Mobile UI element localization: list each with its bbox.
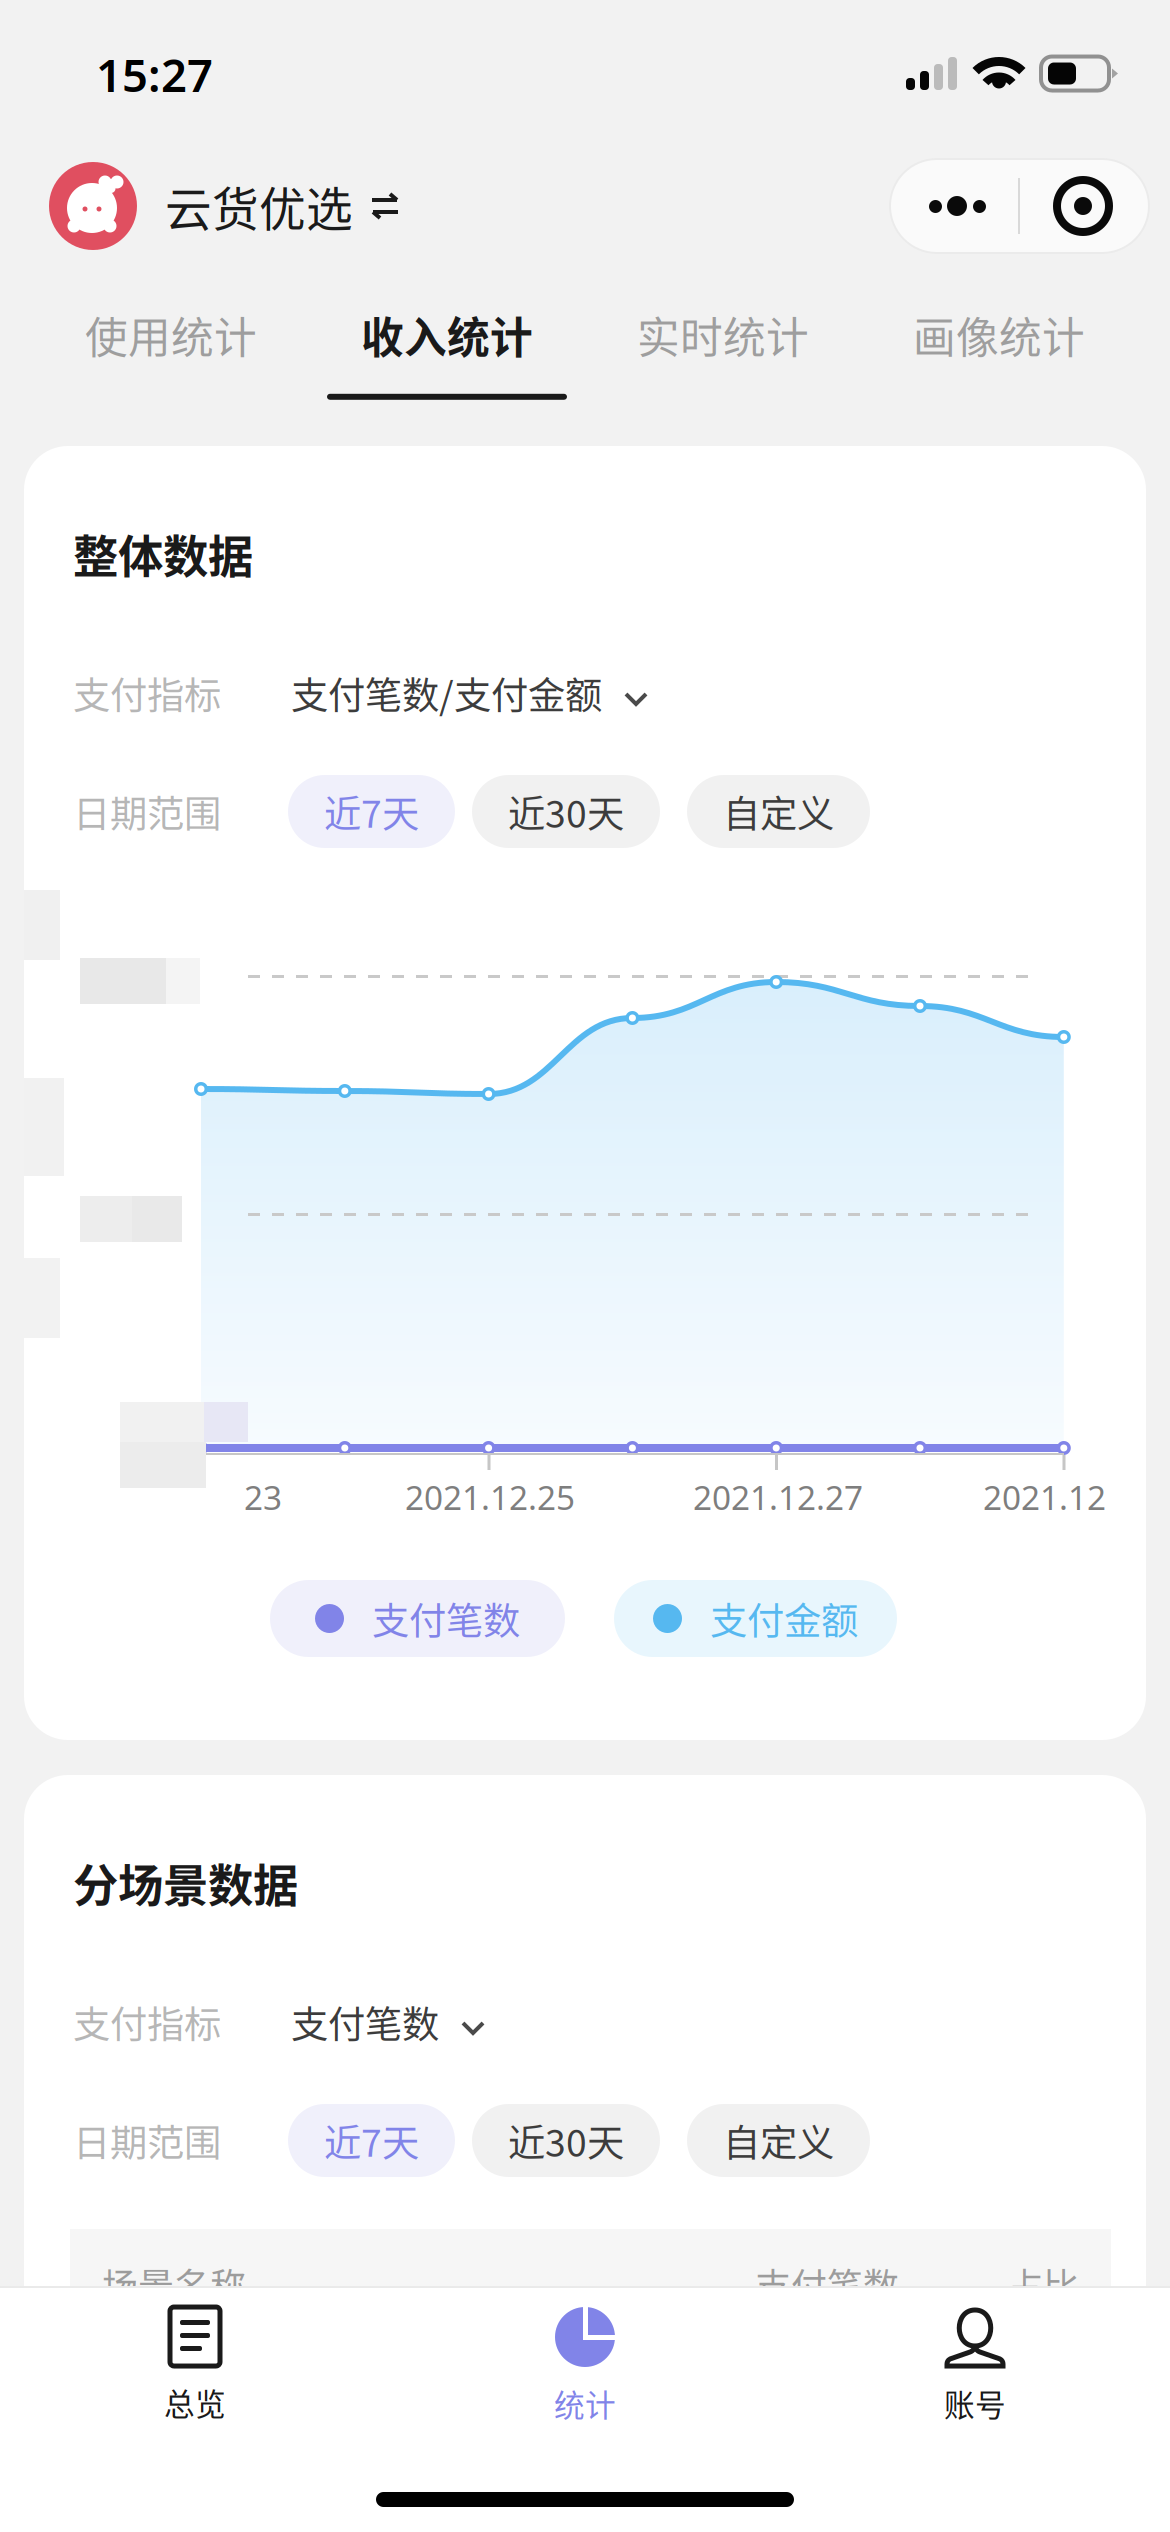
staticText: 总览 xyxy=(164,2380,226,2424)
staticText: 实时统计 xyxy=(637,304,809,366)
staticText: 占比 xyxy=(1007,2258,1079,2310)
button[interactable]: 近7天 xyxy=(288,2104,455,2177)
button[interactable]: 总览 xyxy=(0,2286,390,2446)
button[interactable]: 更多 xyxy=(890,159,1149,253)
staticText: 近30天 xyxy=(508,2113,624,2168)
staticText: 支付笔数 xyxy=(755,2258,899,2310)
button[interactable]: 账号 xyxy=(780,2286,1170,2446)
button[interactable]: 自定义 xyxy=(687,2104,870,2177)
staticText: 账号 xyxy=(944,2381,1006,2425)
button[interactable]: 支付笔数 xyxy=(291,1995,485,2049)
button[interactable]: 自定义 xyxy=(687,775,870,848)
staticText: 23 xyxy=(244,1475,282,1519)
button[interactable]: 统计 xyxy=(390,2286,780,2446)
staticText: 日期范围 xyxy=(73,784,221,839)
button[interactable]: 实时统计 xyxy=(585,271,861,446)
staticText: 近7天 xyxy=(324,2113,419,2168)
staticText: 日期范围 xyxy=(73,2113,221,2168)
staticText: 画像统计 xyxy=(913,304,1085,366)
button[interactable]: 支付笔数 xyxy=(270,1580,565,1657)
button[interactable]: 使用统计 xyxy=(33,271,309,446)
staticText: 自定义 xyxy=(723,784,834,839)
staticText: 15:27 xyxy=(96,44,213,105)
staticText: 2021.12 xyxy=(983,1475,1106,1519)
button[interactable]: 近30天 xyxy=(472,2104,660,2177)
staticText: 云货优选 xyxy=(165,172,353,240)
button[interactable]: 收入统计 xyxy=(309,271,585,446)
staticText: 收入统计 xyxy=(361,304,533,366)
button[interactable]: 画像统计 xyxy=(861,271,1137,446)
staticText: 统计 xyxy=(554,2381,616,2425)
staticText: 2021.12.27 xyxy=(693,1475,863,1519)
staticText: 自定义 xyxy=(723,2113,834,2168)
button[interactable]: 近30天 xyxy=(472,775,660,848)
staticText: 支付指标 xyxy=(73,1995,221,2049)
button[interactable]: 近7天 xyxy=(288,775,455,848)
staticText: 近7天 xyxy=(324,784,419,839)
staticText: 分场景数据 xyxy=(73,1850,298,1916)
staticText: 2021.12.25 xyxy=(405,1475,575,1519)
staticText: 支付笔数/支付金额 xyxy=(291,666,602,720)
staticText: 支付笔数 xyxy=(291,1995,439,2049)
staticText: 使用统计 xyxy=(85,304,257,366)
button[interactable]: 支付金额 xyxy=(614,1580,897,1657)
staticText: 支付金额 xyxy=(710,1591,858,1646)
staticText: 场景名称 xyxy=(102,2258,246,2310)
staticText: 近30天 xyxy=(508,784,624,839)
button[interactable]: 支付笔数/支付金额 xyxy=(291,666,648,720)
staticText: 整体数据 xyxy=(73,521,253,587)
staticText: 支付指标 xyxy=(73,666,221,720)
staticText: 支付笔数 xyxy=(372,1591,520,1646)
